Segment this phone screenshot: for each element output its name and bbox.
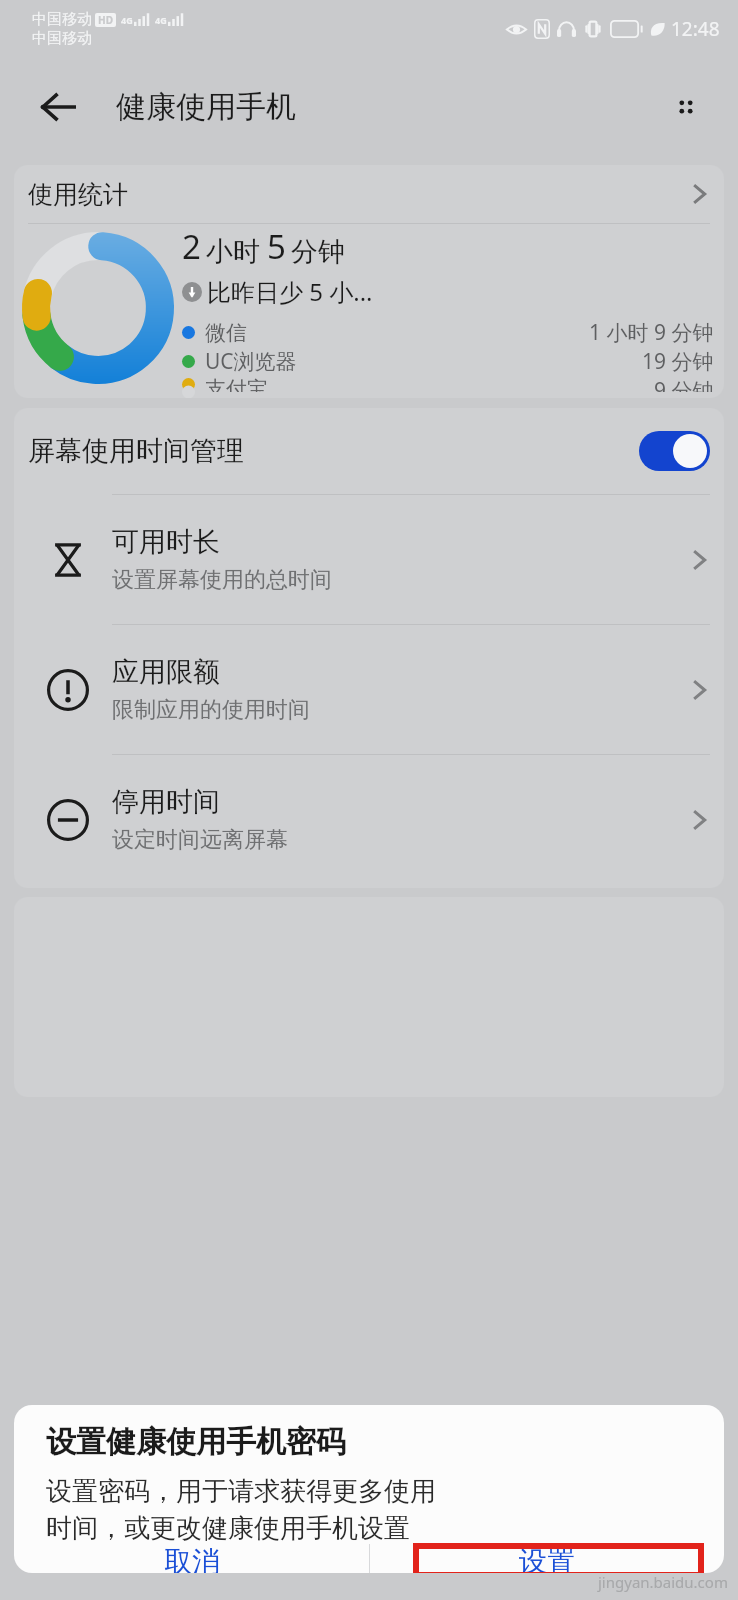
- staticText: 健康使用手机: [116, 88, 296, 126]
- staticText: 可用时长: [112, 525, 220, 559]
- staticText: 12:48: [671, 16, 720, 42]
- button[interactable]: 停用时间: [14, 755, 724, 884]
- button[interactable]: 屏幕使用时间管理: [14, 408, 724, 494]
- button[interactable]: More options: [660, 81, 712, 133]
- staticText: 设置健康使用手机密码: [46, 1423, 346, 1461]
- staticText: 屏幕使用时间管理: [28, 434, 244, 468]
- staticText: UC浏览器: [205, 347, 297, 376]
- staticText: 设置: [519, 1544, 575, 1573]
- staticText: 1 小时 9 分钟: [589, 318, 714, 347]
- button[interactable]: 应用限额: [14, 625, 724, 754]
- staticText: 取消: [164, 1544, 220, 1573]
- staticText: 停用时间: [112, 785, 220, 819]
- staticText: 使用统计: [28, 179, 128, 210]
- staticText: 中国移动: [32, 29, 92, 48]
- button[interactable]: 设置: [369, 1544, 724, 1573]
- staticText: 中国移动: [32, 10, 92, 29]
- staticText: 设置屏幕使用的总时间: [112, 566, 332, 594]
- staticText: 小时: [206, 235, 260, 269]
- staticText: 微信: [205, 320, 247, 346]
- staticText: 2: [182, 224, 201, 269]
- staticText: 4G: [121, 14, 133, 26]
- button[interactable]: Back: [30, 79, 86, 135]
- button[interactable]: 屏幕使用时间管理 switch: [639, 431, 710, 471]
- staticText: 分钟: [291, 235, 345, 269]
- button[interactable]: 可用时长: [14, 495, 724, 624]
- staticText: 限制应用的使用时间: [112, 696, 310, 724]
- staticText: 9 分钟: [654, 376, 714, 392]
- staticText: 4G: [155, 14, 167, 26]
- staticText: 设定时间远离屏幕: [112, 826, 288, 854]
- staticText: 应用限额: [112, 655, 220, 689]
- staticText: jingyan.baidu.com: [598, 1572, 728, 1592]
- button[interactable]: 取消: [14, 1544, 369, 1573]
- staticText: 19 分钟: [642, 347, 714, 376]
- staticText: 5: [267, 224, 286, 269]
- staticText: HD: [98, 13, 113, 27]
- staticText: 支付宝: [205, 376, 268, 392]
- button[interactable]: 使用统计: [14, 165, 724, 223]
- staticText: 设置密码，用于请求获得更多使用 时间，或更改健康使用手机设置: [46, 1475, 436, 1544]
- staticText: 比昨日少 5 小...: [207, 275, 373, 308]
